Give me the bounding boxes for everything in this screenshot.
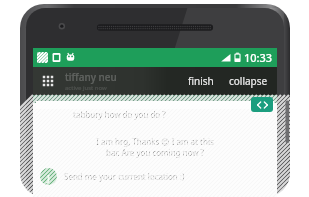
staticText: I am hrg, Thanks 😊 I am at this: [33, 136, 277, 147]
staticText: 10:33: [244, 50, 273, 65]
staticText: active just now: [65, 84, 107, 92]
button[interactable]: Contact avatar: [40, 168, 57, 185]
button[interactable]: collapse: [225, 71, 272, 91]
button[interactable]: finish: [184, 71, 218, 91]
button[interactable]: Code: [251, 97, 273, 112]
staticText: tabbury how do you do ?: [73, 109, 277, 120]
staticText: bar. Are you coming now ?: [33, 147, 277, 158]
staticText: Send me your current location :): [64, 171, 185, 182]
staticText: J: [47, 171, 50, 183]
staticText: tiffany neu: [65, 70, 117, 84]
staticText: finish: [188, 74, 214, 88]
staticText: collapse: [229, 74, 268, 88]
button[interactable]: Apps: [36, 69, 60, 93]
